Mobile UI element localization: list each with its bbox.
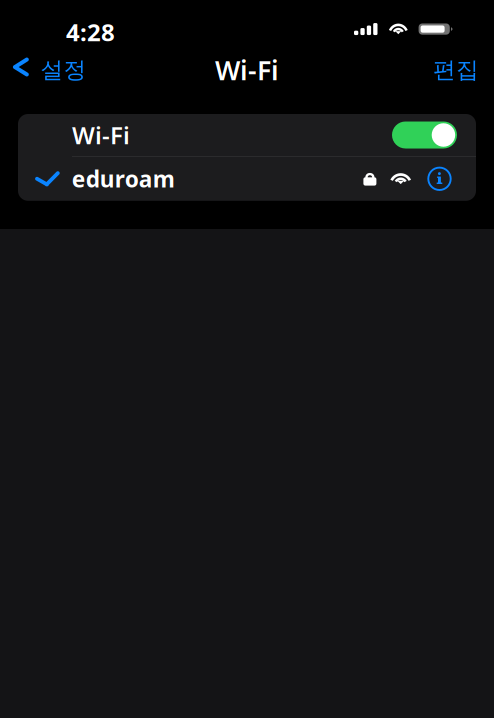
staticText: Wi-Fi — [72, 119, 130, 151]
button[interactable]: Wi-Fi — [392, 121, 457, 148]
staticText: eduroam — [72, 164, 175, 194]
button[interactable]: 편집 — [425, 50, 494, 90]
staticText: 설정 — [41, 56, 87, 84]
staticText: Wi-Fi — [215, 52, 279, 88]
button[interactable]: More Info, eduroam — [428, 167, 451, 190]
staticText: 4:28 — [66, 16, 115, 48]
button[interactable]: 설정 — [0, 50, 95, 90]
button[interactable]: eduroam — [35, 157, 363, 201]
staticText: 편집 — [433, 56, 479, 84]
